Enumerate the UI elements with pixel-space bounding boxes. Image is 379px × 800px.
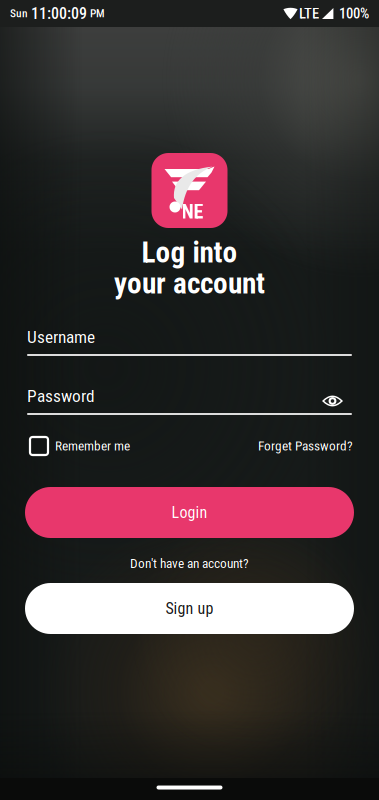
staticText: Don't have an account? — [130, 556, 249, 571]
staticText: Password — [27, 386, 95, 406]
staticText: Sign up — [165, 599, 213, 618]
staticText: Sun — [10, 7, 28, 20]
staticText: Log into — [141, 235, 237, 270]
button[interactable]: Login — [25, 487, 354, 538]
staticText: Forget Password? — [258, 438, 353, 454]
button[interactable]: Forget Password? — [258, 438, 353, 454]
button[interactable]: Remember me — [30, 437, 130, 455]
button[interactable]: Show password — [322, 385, 352, 407]
staticText: Remember me — [55, 438, 130, 454]
staticText: Login — [171, 503, 207, 522]
staticText: 100% — [339, 5, 369, 22]
staticText: PM — [90, 7, 105, 20]
staticText: Username — [27, 327, 95, 347]
staticText: NE — [181, 200, 203, 223]
staticText: LTE — [299, 5, 319, 22]
staticText: 11:00:09 — [31, 4, 87, 23]
button[interactable]: Sign up — [25, 583, 354, 634]
staticText: your account — [114, 266, 265, 301]
